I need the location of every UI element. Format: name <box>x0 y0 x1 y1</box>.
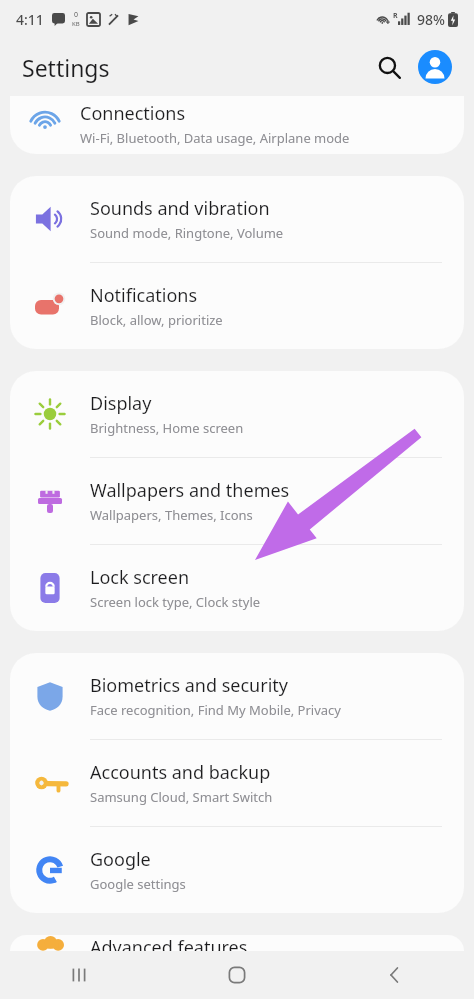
button[interactable]: Wallpapers and themes <box>10 458 464 544</box>
staticText: 98% <box>417 10 445 29</box>
button[interactable]: Google <box>10 827 464 913</box>
staticText: 0 <box>74 10 79 20</box>
staticText: R <box>393 11 398 21</box>
staticText: Wallpapers and themes <box>90 478 290 503</box>
staticText: Screen lock type, Clock style <box>90 593 261 611</box>
button[interactable]: Biometrics and security <box>10 653 464 739</box>
staticText: Face recognition, Find My Mobile, Privac… <box>90 701 341 719</box>
staticText: Settings <box>22 52 110 83</box>
staticText: Sounds and vibration <box>90 196 270 221</box>
staticText: Google <box>90 847 151 872</box>
staticText: Lock screen <box>90 565 190 590</box>
staticText: Biometrics and security <box>90 673 288 698</box>
button[interactable]: Account <box>414 46 456 88</box>
button[interactable]: Recent apps <box>0 951 158 999</box>
staticText: Notifications <box>90 283 198 308</box>
button[interactable]: Lock screen <box>10 545 464 631</box>
staticText: Wallpapers, Themes, Icons <box>90 506 253 524</box>
button[interactable]: Connections <box>10 96 464 154</box>
staticText: Advanced features <box>90 935 248 951</box>
button[interactable]: Accounts and backup <box>10 740 464 826</box>
button[interactable]: Back <box>316 951 474 999</box>
staticText: Brightness, Home screen <box>90 419 244 437</box>
button[interactable]: Search <box>368 46 410 88</box>
staticText: Connections <box>80 101 186 126</box>
staticText: 4:11 <box>16 10 44 29</box>
staticText: Block, allow, prioritize <box>90 311 223 329</box>
staticText: Display <box>90 391 152 416</box>
staticText: Wi-Fi, Bluetooth, Data usage, Airplane m… <box>80 129 350 147</box>
staticText: Sound mode, Ringtone, Volume <box>90 224 284 242</box>
staticText: Accounts and backup <box>90 760 271 785</box>
button[interactable]: Display <box>10 371 464 457</box>
staticText: Google settings <box>90 875 186 893</box>
button[interactable]: Home <box>158 951 316 999</box>
button[interactable]: Sounds and vibration <box>10 176 464 262</box>
staticText: Samsung Cloud, Smart Switch <box>90 788 273 806</box>
staticText: KB <box>72 20 80 28</box>
button[interactable]: Notifications <box>10 263 464 349</box>
button[interactable]: Advanced features <box>10 935 464 951</box>
